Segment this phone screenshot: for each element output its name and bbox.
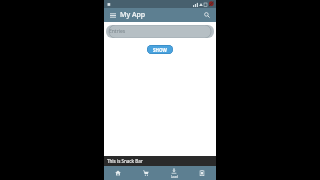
staticText: My App — [120, 10, 146, 20]
button[interactable]: Battery — [188, 166, 216, 180]
button[interactable]: Open navigation drawer — [108, 11, 117, 20]
staticText: This is Snack Bar — [107, 158, 143, 164]
staticText: SHOW — [153, 47, 167, 53]
staticText: Load — [171, 175, 178, 179]
button[interactable]: Cart — [132, 166, 160, 180]
button[interactable]: Home — [104, 166, 132, 180]
staticText: Entries — [109, 28, 126, 35]
button[interactable]: Downloads — [160, 166, 188, 180]
button[interactable]: This is Snack Bar — [104, 156, 216, 166]
button[interactable]: Search — [202, 10, 212, 20]
button[interactable]: Entries — [106, 25, 214, 38]
button[interactable]: SHOW — [147, 45, 173, 54]
